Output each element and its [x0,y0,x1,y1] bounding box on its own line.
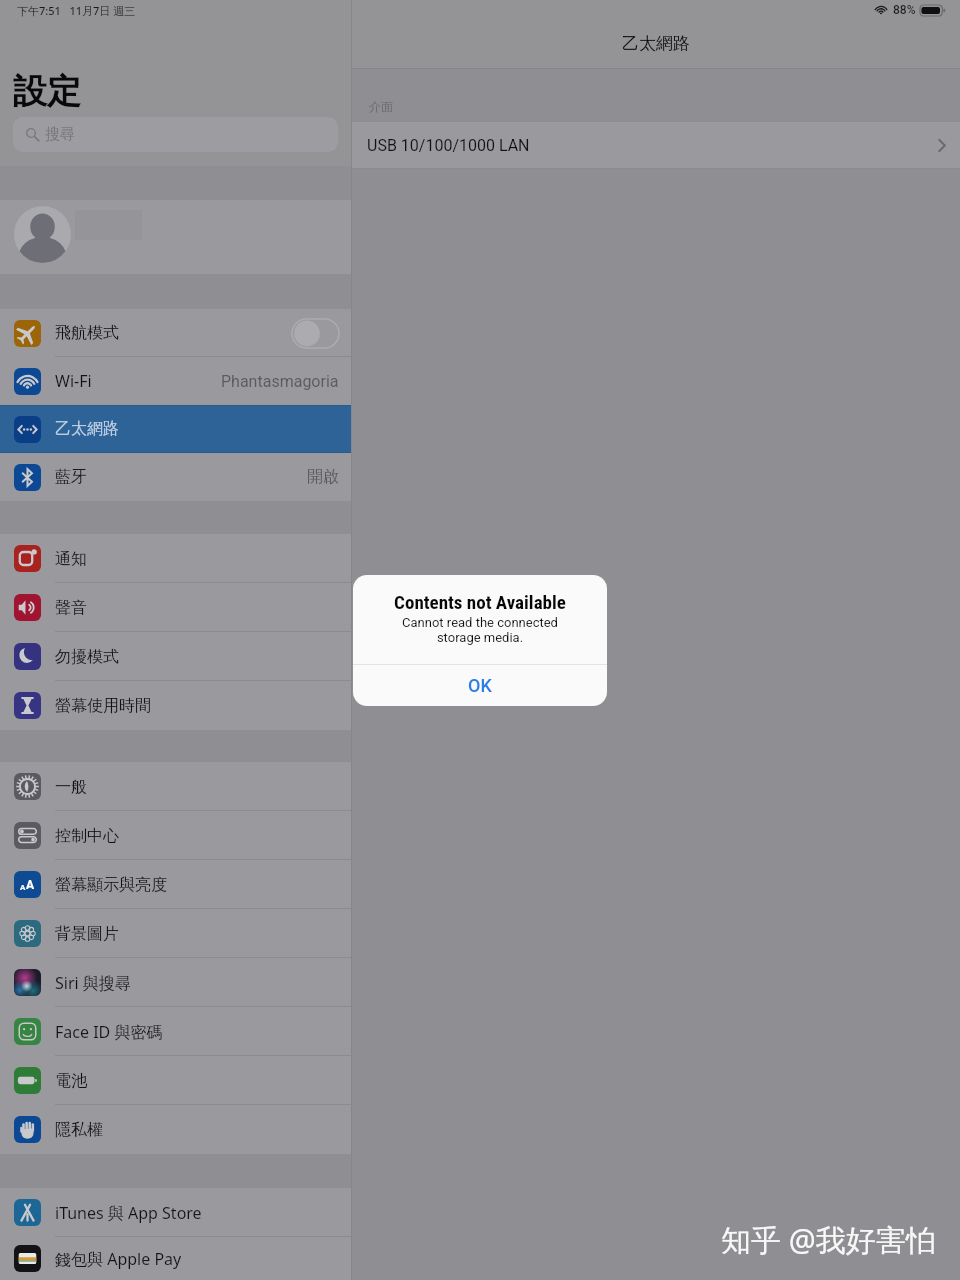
staticText: 知乎 @我好害怕 [721,1219,936,1260]
staticText: 控制中心 [55,826,119,846]
button[interactable]: A [0,860,352,909]
staticText: 飛航模式 [55,323,119,343]
button[interactable]: 藍牙 [0,453,352,501]
button[interactable]: 通知 [0,534,352,583]
staticText: 聲音 [55,598,87,618]
button[interactable]: 搜尋 [13,117,338,152]
staticText: 錢包與 Apple Pay [55,1248,182,1270]
staticText: 乙太網路 [55,419,119,439]
staticText: Phantasmagoria [221,372,339,391]
button[interactable]: 聲音 [0,583,352,632]
button[interactable]: 背景圖片 [0,909,352,958]
button[interactable]: 乙太網路 [0,405,352,453]
staticText: 勿擾模式 [55,647,119,667]
button[interactable] [0,200,352,274]
staticText: 開啟 [307,467,339,487]
staticText: 電池 [55,1071,87,1091]
staticText: 螢幕顯示與亮度 [55,875,167,895]
staticText: USB 10/100/1000 LAN [367,136,530,155]
staticText: 藍牙 [55,467,87,487]
staticText: 背景圖片 [55,924,119,944]
staticText: Face ID 與密碼 [55,1021,163,1043]
staticText: A [26,878,35,892]
button[interactable]: 一般 [0,762,352,811]
staticText: 搜尋 [45,125,75,144]
staticText: 一般 [55,777,87,797]
staticText: Siri 與搜尋 [55,972,131,994]
button[interactable]: USB 10/100/1000 LAN [352,122,960,168]
button[interactable]: 隱私權 [0,1105,352,1154]
button[interactable]: iTunes 與 App Store [0,1188,352,1237]
button[interactable]: 控制中心 [0,811,352,860]
button[interactable]: OK [353,665,607,706]
button[interactable]: Siri 與搜尋 [0,958,352,1007]
button[interactable]: 電池 [0,1056,352,1105]
button[interactable]: Wi-Fi [0,357,352,405]
button[interactable]: 勿擾模式 [0,632,352,681]
staticText: 螢幕使用時間 [55,696,151,716]
button[interactable]: Airplane Mode toggle [292,319,339,348]
button[interactable]: Face ID 與密碼 [0,1007,352,1056]
staticText: iTunes 與 App Store [55,1202,202,1224]
staticText: Contents not Available [353,591,607,613]
staticText: 設定 [13,70,81,113]
staticText: OK [468,675,492,696]
staticText: 通知 [55,549,87,569]
button[interactable]: 錢包與 Apple Pay [0,1237,352,1280]
staticText: 介面 [369,99,393,114]
staticText: Wi-Fi [55,370,92,392]
button[interactable]: 飛航模式 [0,309,352,357]
staticText: 下午7:51 11月7日 週三 [17,3,136,18]
staticText: A [20,883,26,892]
button[interactable]: 螢幕使用時間 [0,681,352,730]
staticText: 乙太網路 [622,33,690,54]
staticText: 隱私權 [55,1120,103,1140]
staticText: 88% [893,3,916,17]
staticText: Cannot read the connected storage media. [353,615,607,645]
